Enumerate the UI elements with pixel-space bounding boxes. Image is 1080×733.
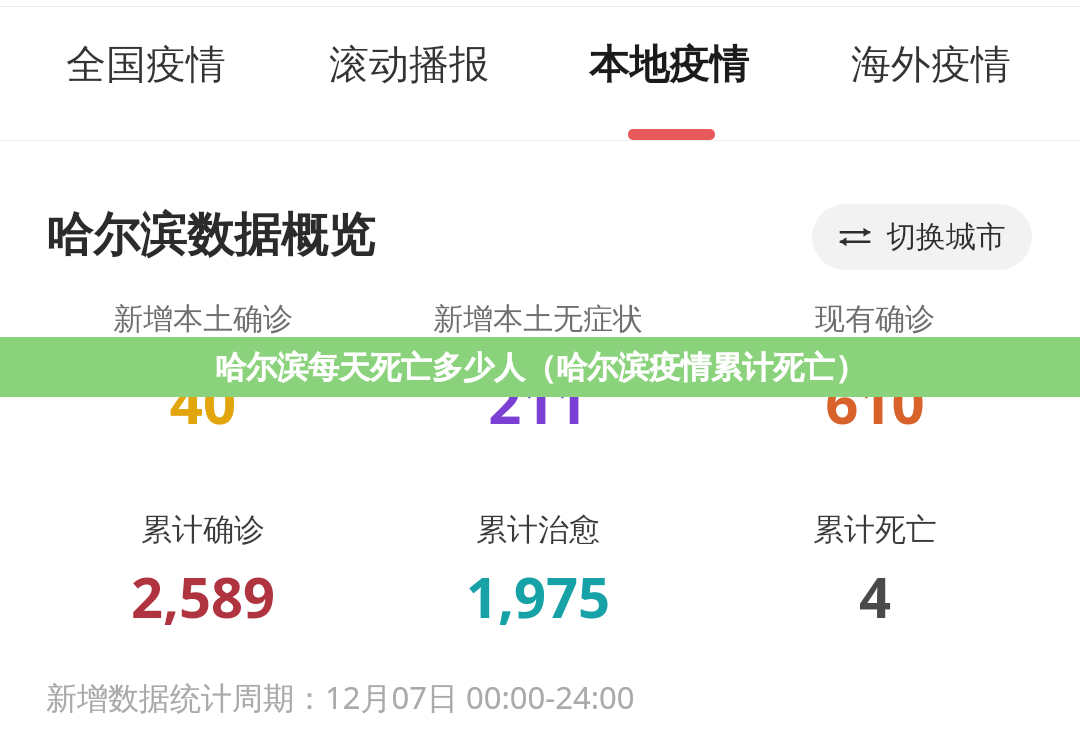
staticText: 滚动播报: [329, 39, 489, 89]
button[interactable]: 全国疫情: [34, 7, 258, 140]
staticText: 40: [0, 362, 553, 441]
staticText: 全国疫情: [66, 39, 226, 89]
staticText: 累计治愈: [188, 510, 888, 549]
staticText: 2,589: [0, 558, 553, 634]
staticText: 本地疫情: [589, 39, 749, 89]
staticText: 哈尔滨每天死亡多少人（哈尔滨疫情累计死亡）: [215, 348, 866, 387]
button[interactable]: 滚动播报: [300, 7, 518, 140]
staticText: 新增本土确诊: [0, 300, 553, 338]
staticText: 1,975: [188, 558, 888, 634]
staticText: 现有确诊: [525, 300, 1080, 338]
staticText: 211: [188, 362, 888, 441]
staticText: 海外疫情: [851, 39, 1011, 89]
button[interactable]: 海外疫情: [822, 7, 1040, 140]
staticText: 哈尔滨数据概览: [46, 206, 375, 265]
button[interactable]: 切换城市: [812, 204, 1032, 270]
staticText: 新增本土无症状: [188, 300, 888, 338]
staticText: 累计死亡: [525, 510, 1080, 549]
staticText: 新增数据统计周期：12月07日 00:00-24:00: [46, 676, 635, 718]
staticText: 累计确诊: [0, 510, 553, 549]
button[interactable]: 本地疫情: [560, 7, 778, 140]
staticText: 4: [525, 558, 1080, 634]
staticText: 切换城市: [886, 218, 1006, 256]
staticText: 610: [525, 362, 1080, 441]
